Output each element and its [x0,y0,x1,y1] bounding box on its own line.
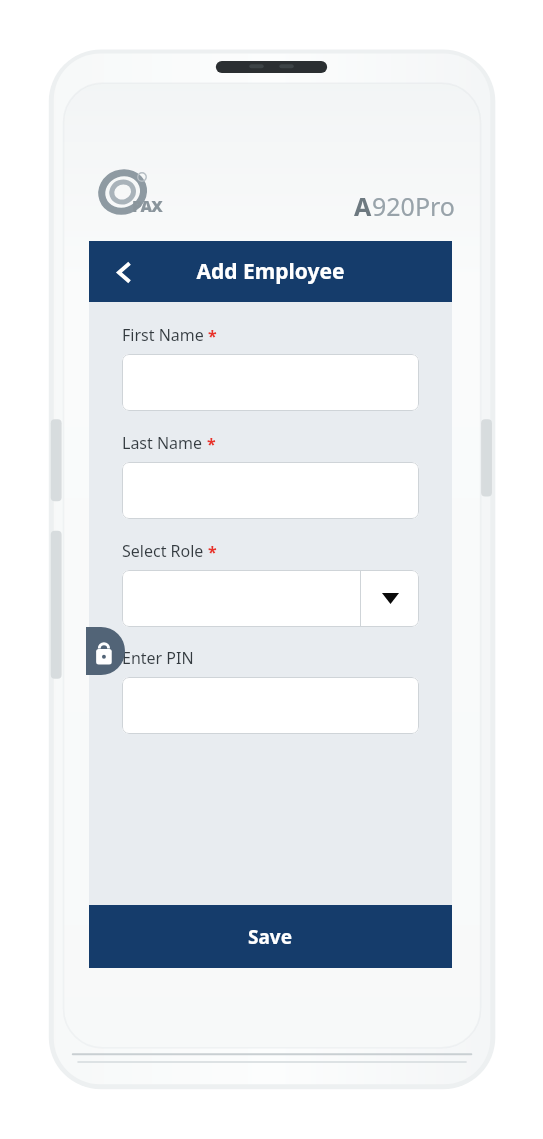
staticText: * [208,541,217,563]
button[interactable]: Save [89,905,452,968]
button[interactable]: Secure PIN entry [86,627,125,675]
staticText: PAX [132,195,163,217]
button[interactable] [122,354,419,411]
button[interactable]: Back [101,250,145,294]
staticText: * [207,433,216,455]
staticText: Enter PIN [122,647,194,669]
staticText: Last Name [122,432,203,454]
staticText: A [354,189,372,223]
staticText: Add Employee [196,257,345,286]
staticText: Save [248,924,293,950]
button[interactable]: Select Role dropdown [122,570,419,627]
button[interactable] [122,462,419,519]
staticText: Select Role [122,540,204,562]
staticText: * [208,325,217,347]
staticText: 920Pro [372,189,455,223]
button[interactable] [122,677,419,734]
staticText: First Name [122,324,204,346]
